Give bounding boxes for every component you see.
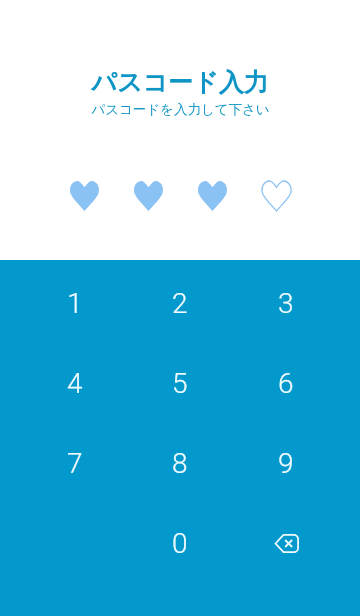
button[interactable]: 3: [233, 263, 339, 343]
button[interactable]: 7: [22, 423, 127, 503]
staticText: 7: [67, 447, 83, 480]
staticText: 0: [172, 527, 188, 560]
staticText: 5: [172, 367, 188, 400]
staticText: 6: [278, 367, 294, 400]
button[interactable]: Backspace: [233, 503, 339, 583]
button[interactable]: 9: [233, 423, 339, 503]
staticText: 8: [172, 447, 188, 480]
staticText: 2: [172, 287, 188, 320]
button[interactable]: 1: [22, 263, 127, 343]
staticText: 9: [278, 447, 294, 480]
button[interactable]: 8: [127, 423, 233, 503]
button[interactable]: 4: [22, 343, 127, 423]
button[interactable]: 5: [127, 343, 233, 423]
staticText: 4: [67, 367, 83, 400]
staticText: パスコード入力: [91, 67, 269, 98]
button[interactable]: 2: [127, 263, 233, 343]
button[interactable]: 6: [233, 343, 339, 423]
staticText: 1: [67, 287, 83, 320]
staticText: 3: [278, 287, 294, 320]
staticText: パスコードを入力して下さい: [91, 101, 270, 118]
button[interactable]: 0: [127, 503, 233, 583]
